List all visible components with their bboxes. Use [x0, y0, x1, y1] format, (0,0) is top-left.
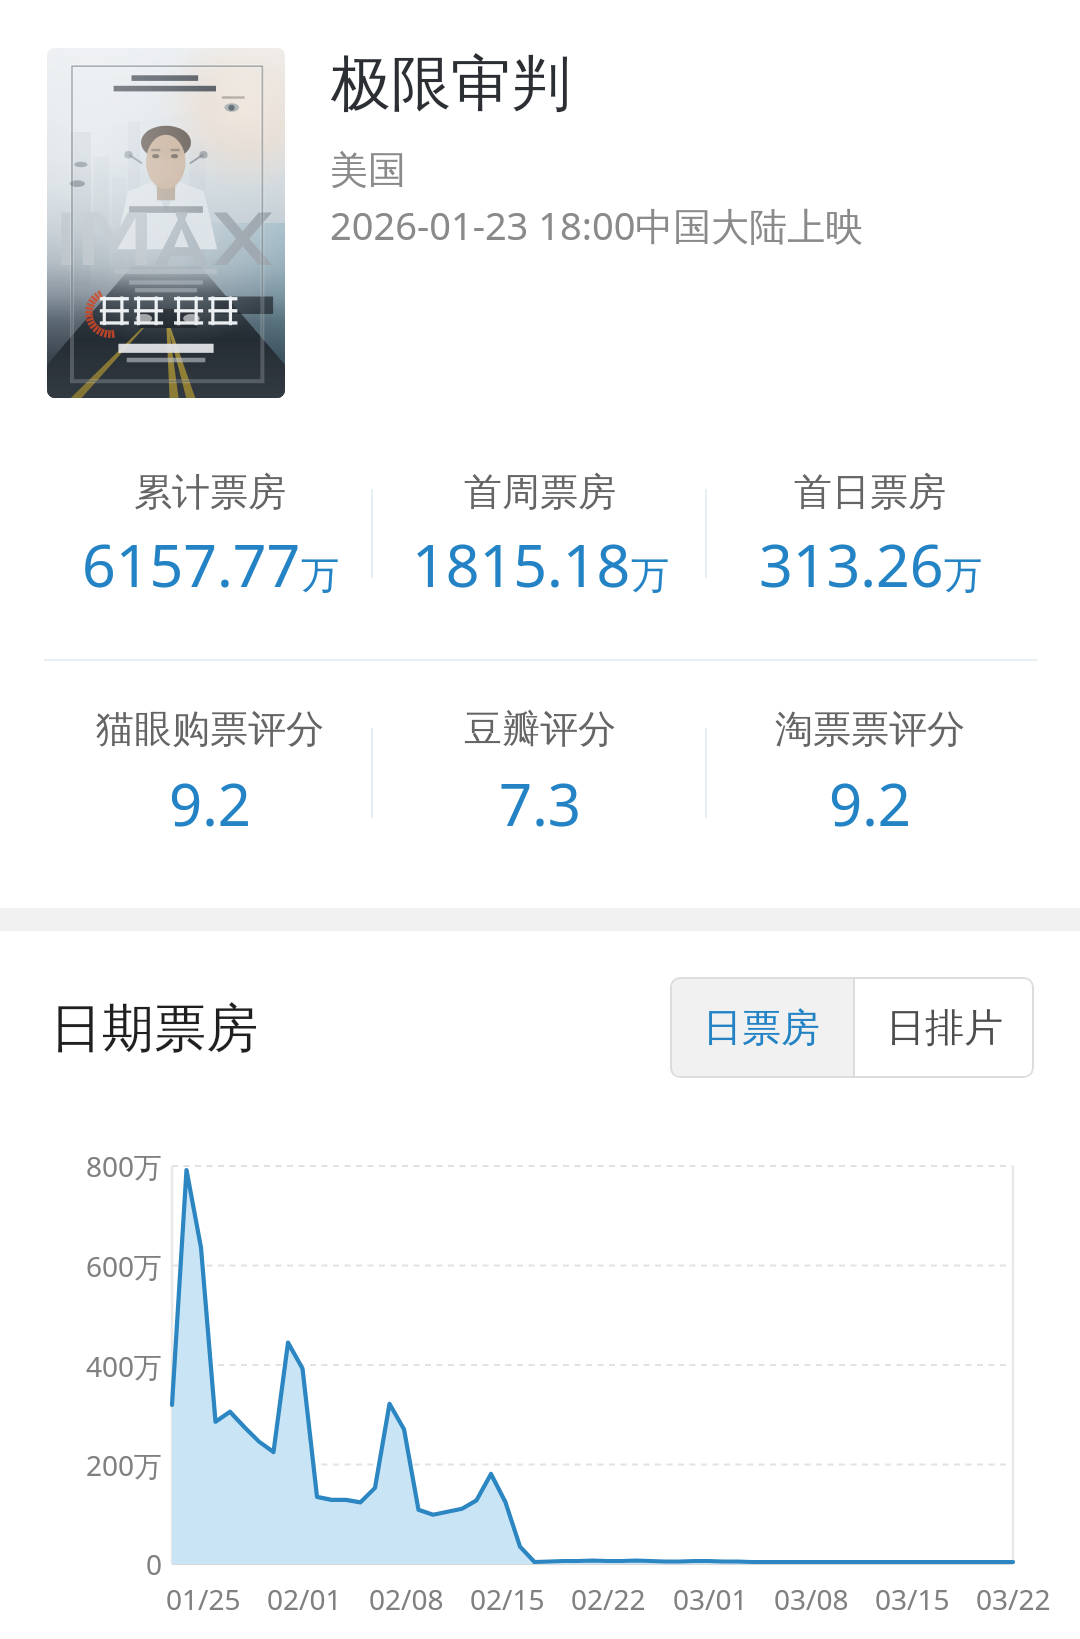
staticText: 美国 [330, 146, 406, 194]
staticText: 200万 [86, 1446, 163, 1484]
staticText: 03/15 [875, 1580, 950, 1618]
staticText: 6157.77 [82, 524, 301, 604]
staticText: 03/08 [774, 1580, 849, 1618]
staticText: 02/22 [571, 1580, 646, 1618]
staticText: 万 [631, 551, 669, 599]
button[interactable]: 首周票房 [375, 460, 705, 596]
staticText: 800万 [86, 1147, 163, 1185]
staticText: 1815.18 [412, 524, 631, 604]
staticText: 7.3 [499, 764, 581, 843]
button[interactable]: 日排片 [855, 977, 1034, 1078]
staticText: 600万 [86, 1247, 163, 1285]
button[interactable]: 日票房 [670, 977, 853, 1078]
button[interactable]: 累计票房 [45, 460, 375, 596]
staticText: 万 [944, 551, 982, 599]
staticText: 313.26 [759, 524, 944, 604]
staticText: 日期票房 [50, 996, 258, 1062]
staticText: 极限审判 [331, 46, 571, 122]
staticText: 9.2 [829, 764, 911, 843]
button[interactable]: 首日票房 [705, 460, 1035, 596]
button[interactable]: 极限审判 [320, 40, 1037, 270]
staticText: 400万 [86, 1347, 163, 1385]
button[interactable]: 淘票票评分 [705, 697, 1035, 836]
staticText: 日票房 [703, 1003, 820, 1052]
staticText: 万 [301, 551, 339, 599]
staticText: 03/22 [976, 1580, 1051, 1618]
staticText: 0 [146, 1545, 163, 1583]
staticText: 累计票房 [134, 468, 286, 516]
staticText: 01/25 [166, 1580, 241, 1618]
staticText: 日排片 [886, 1003, 1003, 1052]
staticText: 豆瓣评分 [464, 705, 616, 753]
staticText: 02/15 [470, 1580, 545, 1618]
staticText: 首周票房 [464, 468, 616, 516]
staticText: 淘票票评分 [775, 705, 965, 753]
button[interactable]: 豆瓣评分 [375, 697, 705, 836]
staticText: 猫眼购票评分 [96, 705, 324, 753]
staticText: 03/01 [673, 1580, 748, 1618]
staticText: 2026-01-23 18:00中国大陆上映 [330, 199, 864, 251]
button[interactable]: 极限审判 电影海报 [47, 48, 285, 398]
staticText: 02/01 [267, 1580, 342, 1618]
staticText: 首日票房 [794, 468, 946, 516]
staticText: 9.2 [169, 764, 251, 843]
staticText: 02/08 [369, 1580, 444, 1618]
button[interactable]: 猫眼购票评分 [45, 697, 375, 836]
